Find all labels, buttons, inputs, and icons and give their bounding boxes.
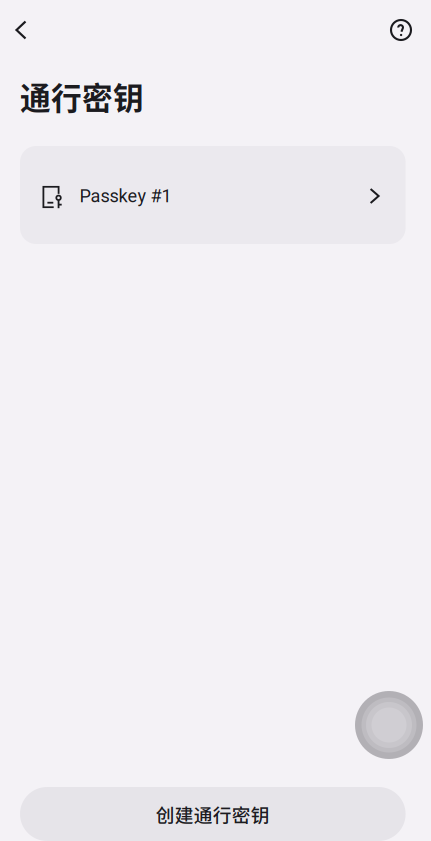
button[interactable]: Back (0, 9, 42, 51)
button[interactable]: Accessibility shortcut (355, 691, 423, 759)
button[interactable]: 创建通行密钥 (20, 787, 406, 841)
staticText: 通行密钥 (20, 74, 144, 118)
button[interactable]: Passkey #1 (20, 146, 406, 244)
staticText: Passkey #1 (79, 185, 171, 207)
button[interactable]: Help (380, 9, 422, 51)
staticText: 创建通行密钥 (156, 800, 270, 827)
